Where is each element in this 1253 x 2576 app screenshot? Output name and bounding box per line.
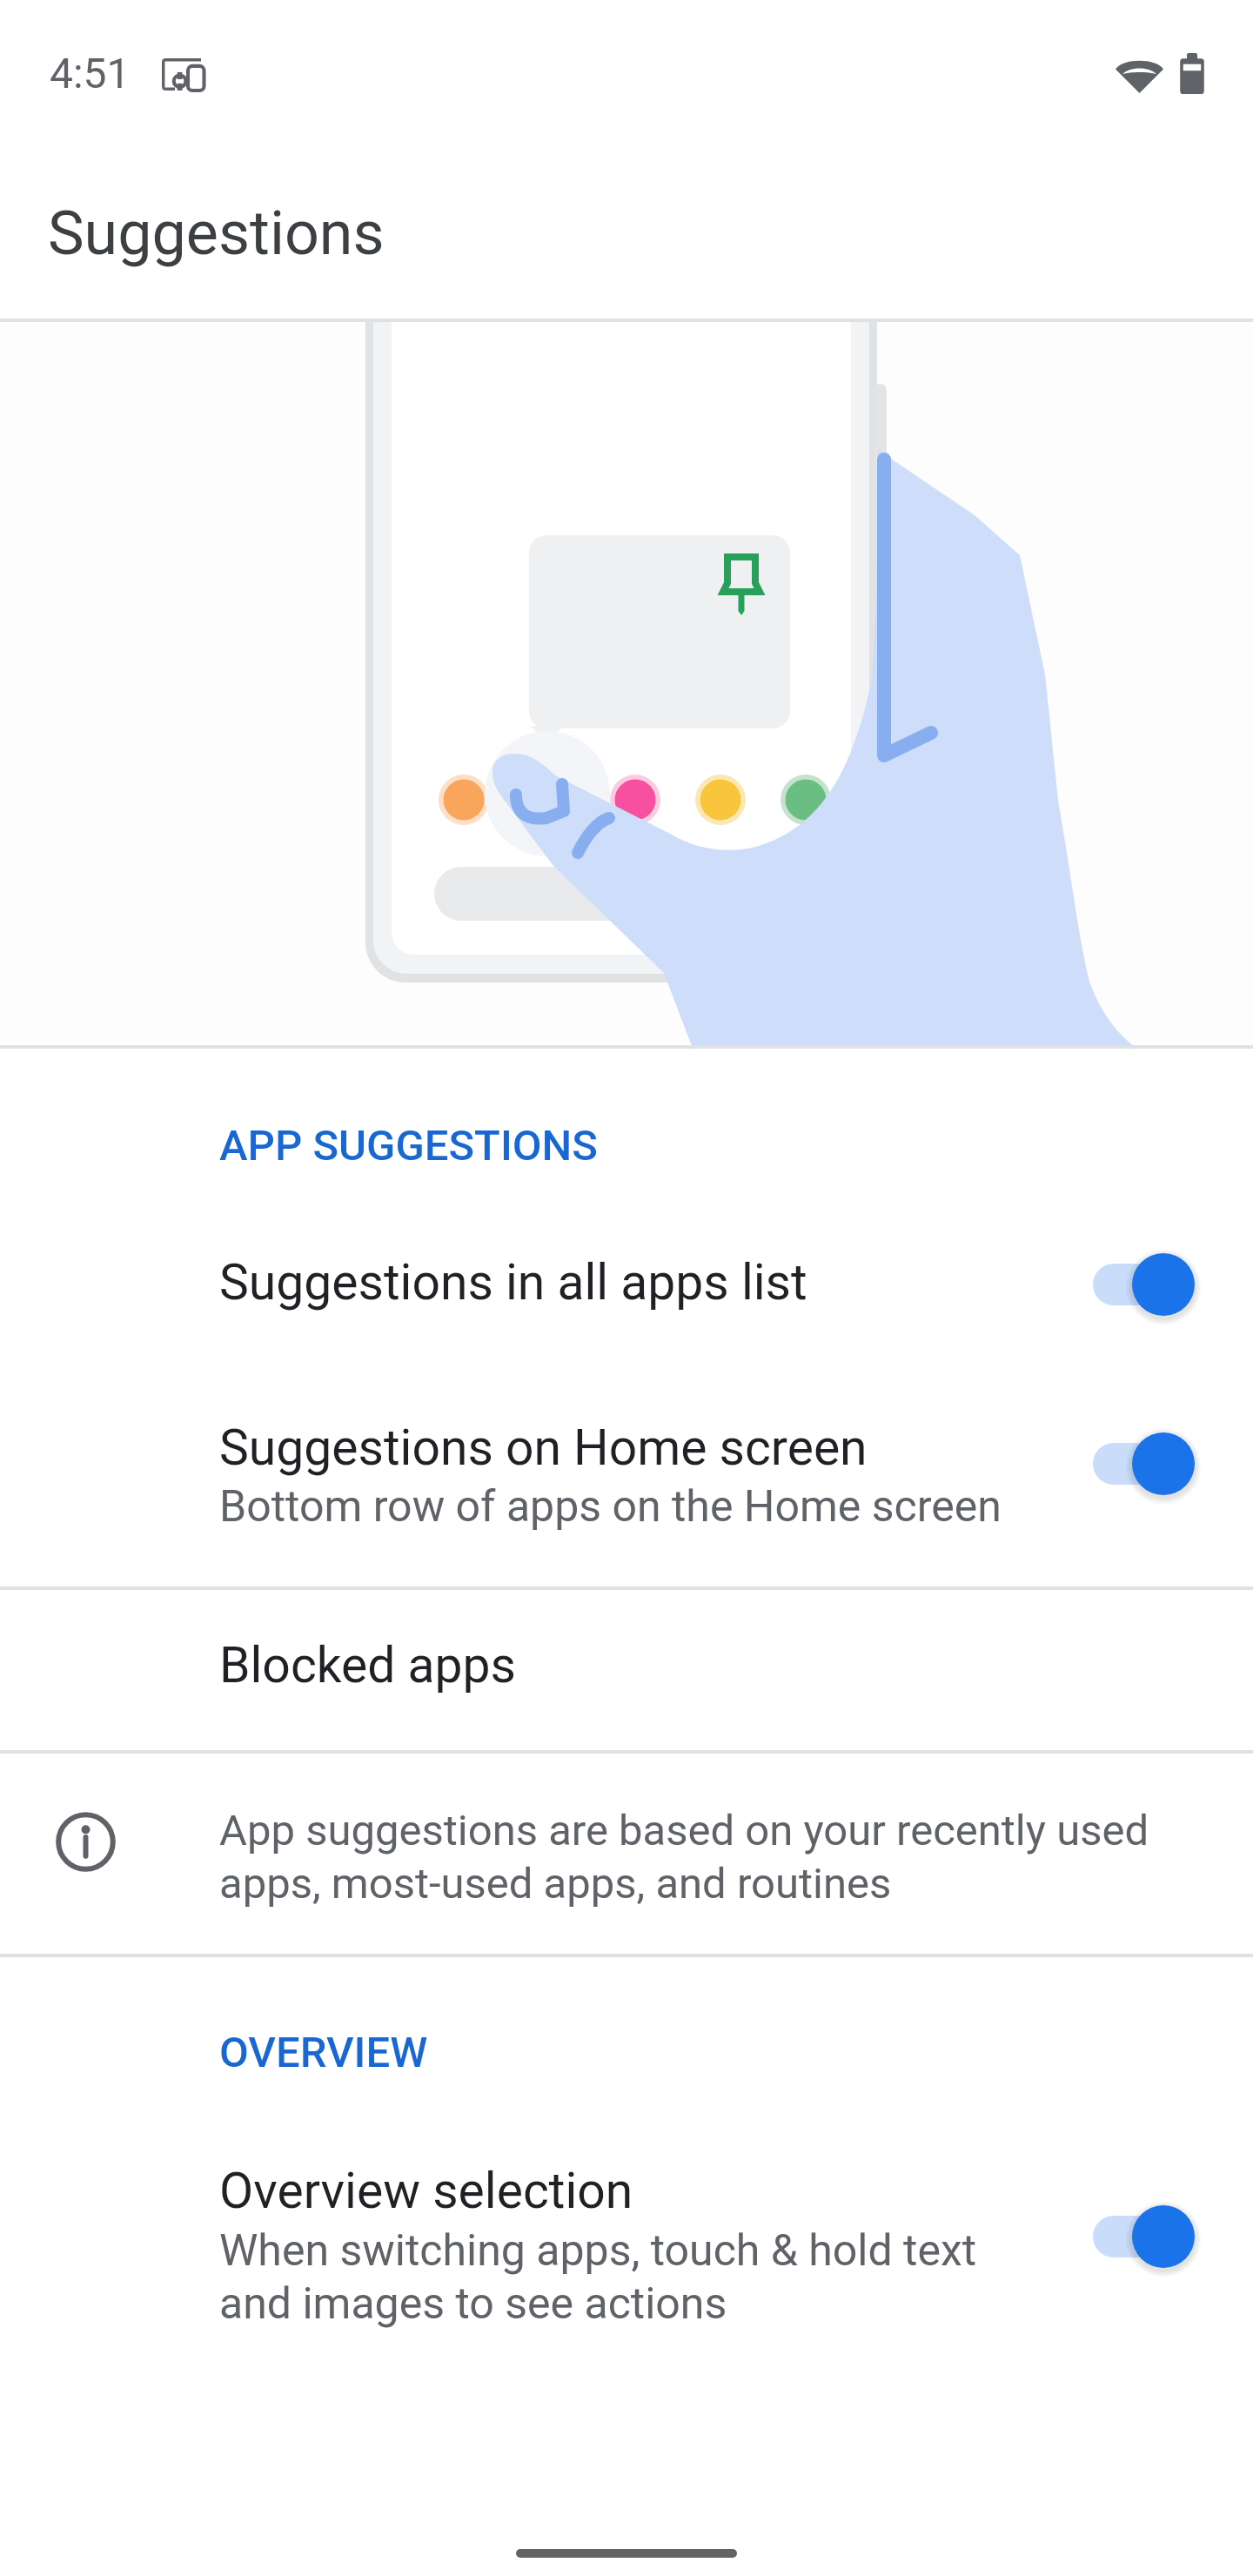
other: Information <box>56 1812 116 1872</box>
staticText: Bottom row of apps on the Home screen <box>219 1481 1002 1533</box>
staticText: Blocked apps <box>219 1636 516 1694</box>
staticText: Overview selection <box>219 2162 633 2220</box>
button[interactable]: Overview selection <box>0 2110 1253 2359</box>
button[interactable]: Suggestions on Home screen <box>0 1371 1253 1557</box>
staticText: App suggestions are based on your recent… <box>219 1806 1203 1909</box>
staticText: When switching apps, touch & hold text a… <box>219 2225 985 2329</box>
staticText: OVERVIEW <box>219 2028 428 2077</box>
button[interactable]: Suggestions in all apps list <box>0 1222 1253 1346</box>
staticText: Suggestions on Home screen <box>219 1419 868 1477</box>
staticText: Suggestions in all apps list <box>219 1253 807 1311</box>
button[interactable]: Blocked apps <box>0 1593 1253 1754</box>
staticText: Suggestions <box>48 198 385 269</box>
staticText: APP SUGGESTIONS <box>219 1121 598 1171</box>
staticText: 4:51 <box>50 49 131 97</box>
